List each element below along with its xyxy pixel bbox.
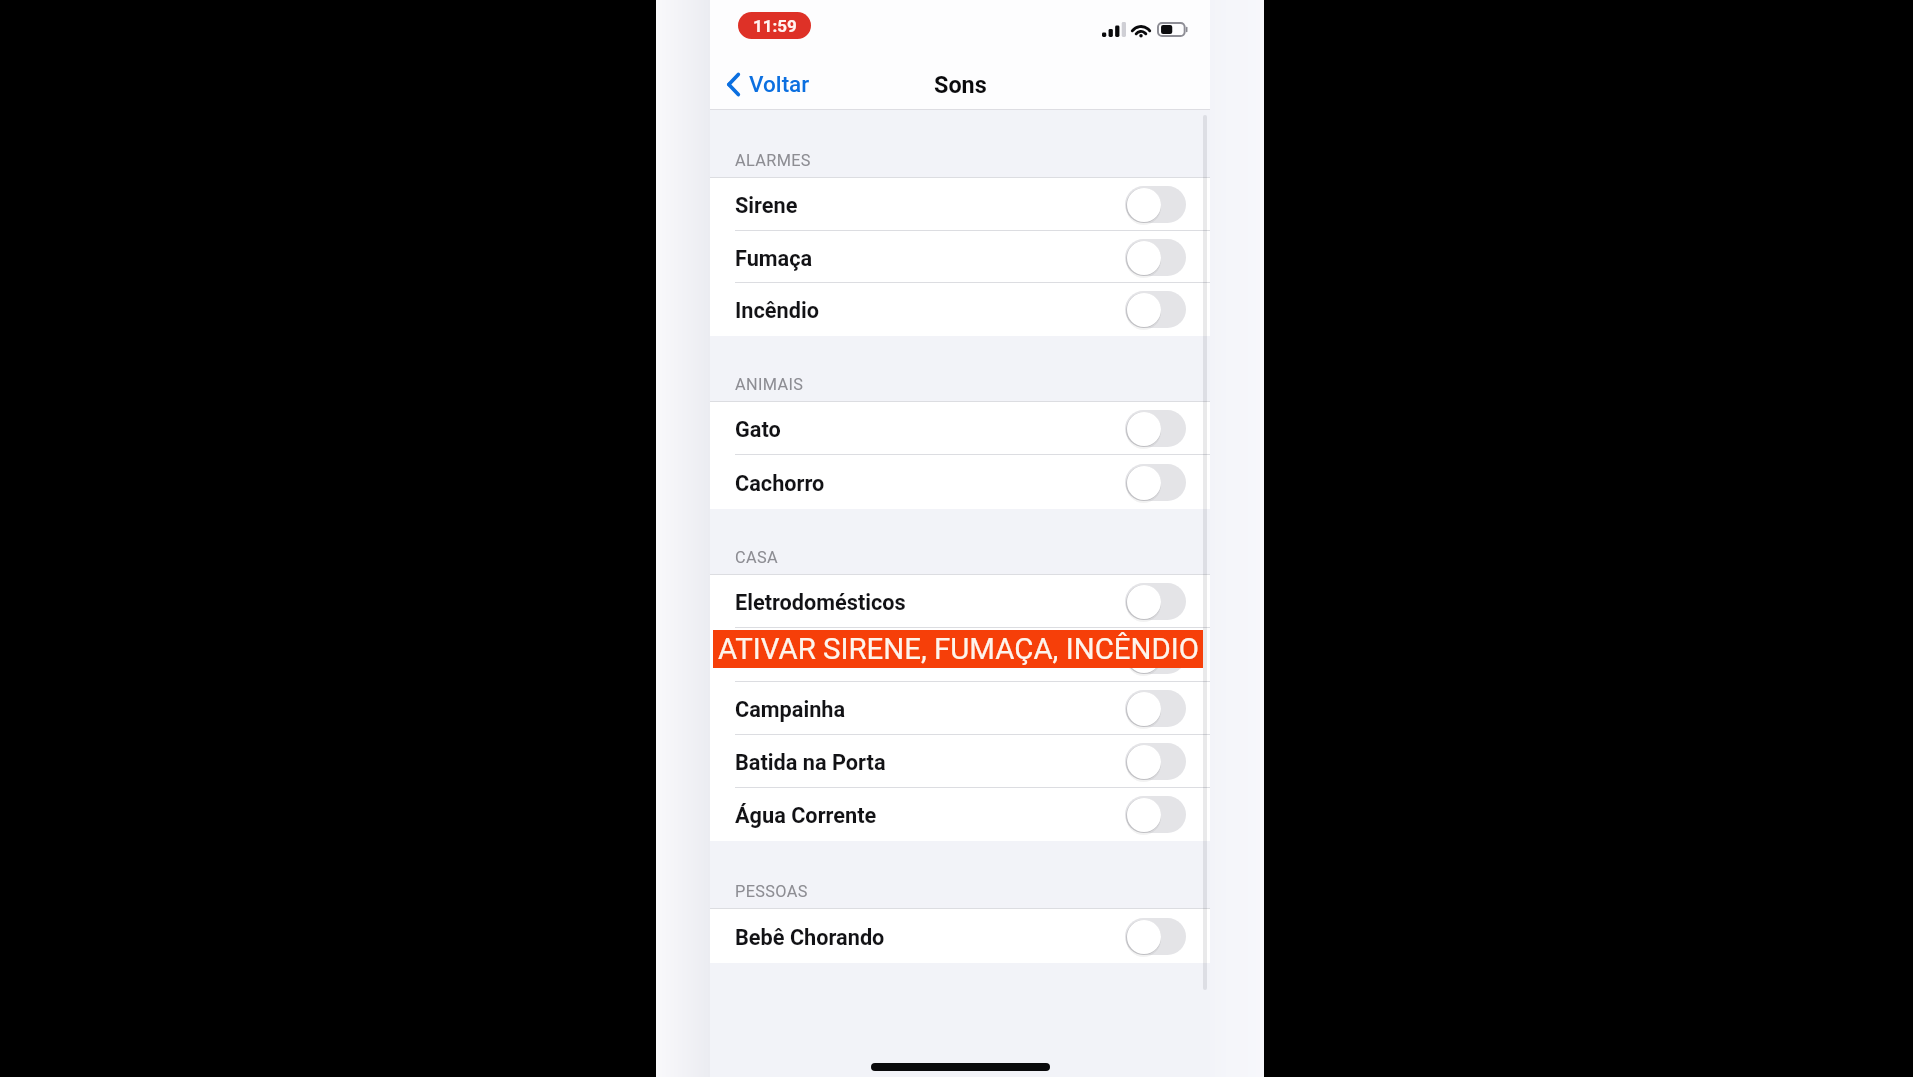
- staticText: Fumaça: [735, 246, 1125, 271]
- button[interactable]: Toggle: [1125, 917, 1186, 956]
- staticText: Sirene: [735, 193, 1125, 218]
- staticText: Bebê Chorando: [735, 925, 1125, 950]
- button[interactable]: Toggle: [1125, 582, 1186, 621]
- staticText: ATIVAR SIRENE, FUMAÇA, INCÊNDIO: [718, 632, 1199, 666]
- staticText: Incêndio: [735, 298, 1125, 323]
- button[interactable]: Batida na Porta: [710, 735, 1210, 788]
- other: Wi-Fi: [1131, 22, 1151, 37]
- button[interactable]: Toggle: [1125, 742, 1186, 781]
- button[interactable]: Eletrodomésticos: [710, 575, 1210, 628]
- button[interactable]: Toggle: [1125, 795, 1186, 834]
- button[interactable]: Toggle: [1125, 185, 1186, 224]
- button[interactable]: Gato: [710, 402, 1210, 455]
- button[interactable]: Água Corrente: [710, 788, 1210, 841]
- staticText: ALARMES: [735, 151, 811, 170]
- staticText: ANIMAIS: [735, 375, 804, 394]
- button[interactable]: Toggle: [1125, 689, 1186, 728]
- staticText: Sirene de Carro: [735, 644, 1125, 669]
- other: Battery: [1157, 22, 1189, 37]
- button[interactable]: Voltar: [722, 65, 814, 103]
- staticText: Eletrodomésticos: [735, 590, 1125, 615]
- staticText: 11:59: [753, 16, 797, 36]
- button[interactable]: Fumaça: [710, 231, 1210, 283]
- button[interactable]: Toggle: [1125, 290, 1186, 329]
- staticText: Voltar: [749, 71, 810, 97]
- staticText: PESSOAS: [735, 882, 808, 901]
- button[interactable]: Toggle: [1125, 238, 1186, 277]
- button[interactable]: Campainha: [710, 682, 1210, 735]
- button[interactable]: Sirene: [710, 178, 1210, 231]
- button[interactable]: Cachorro: [710, 455, 1210, 509]
- other: Cellular signal: [1102, 22, 1126, 37]
- staticText: Cachorro: [735, 471, 1125, 496]
- button[interactable]: Toggle: [1125, 463, 1186, 502]
- staticText: Sons: [934, 71, 987, 98]
- button[interactable]: Bebê Chorando: [710, 909, 1210, 963]
- staticText: Batida na Porta: [735, 750, 1125, 775]
- staticText: CASA: [735, 548, 778, 567]
- button[interactable]: Sirene de Carro: [710, 628, 1210, 682]
- staticText: Água Corrente: [735, 803, 1125, 828]
- button[interactable]: Incêndio: [710, 283, 1210, 336]
- staticText: Campainha: [735, 697, 1125, 722]
- button[interactable]: Toggle: [1125, 636, 1186, 675]
- button[interactable]: Toggle: [1125, 409, 1186, 448]
- staticText: Gato: [735, 417, 1125, 442]
